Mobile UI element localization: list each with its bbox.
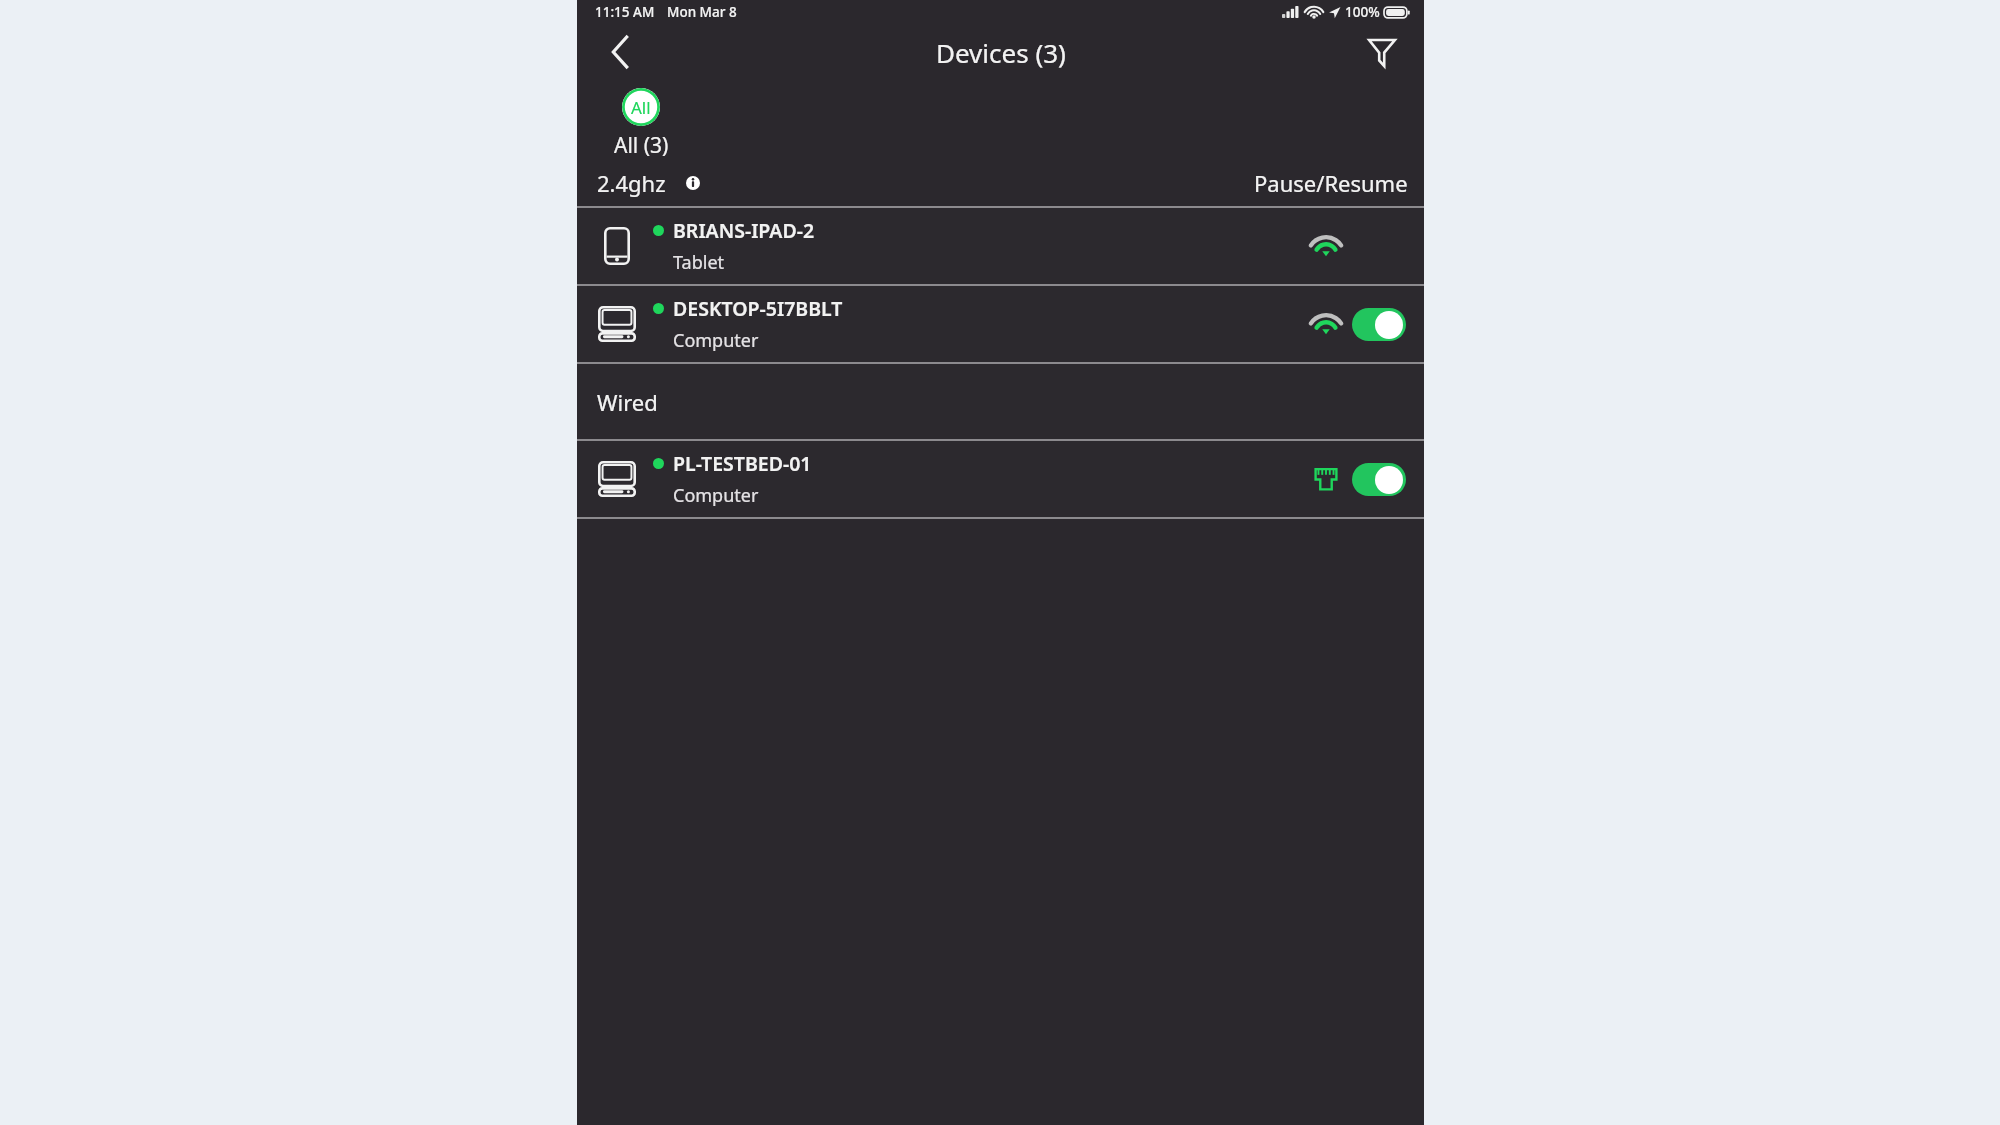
button[interactable]: Toggle device access — [1352, 308, 1406, 341]
button[interactable]: All — [597, 88, 685, 160]
button[interactable]: PL-TESTBED-01 — [577, 441, 1424, 517]
staticText: BRIANS-IPAD-2 — [673, 217, 815, 244]
staticText: 2.4ghz — [597, 168, 666, 198]
staticText: Tablet — [673, 250, 725, 275]
staticText: All — [631, 96, 651, 119]
button[interactable]: Filter — [1358, 28, 1406, 76]
button[interactable]: Pause/Resume — [1238, 162, 1424, 204]
staticText: Wired — [597, 387, 658, 417]
staticText: 11:15 AM — [595, 3, 655, 21]
staticText: Pause/Resume — [1254, 168, 1408, 198]
button[interactable]: Information — [680, 170, 706, 196]
button[interactable]: BRIANS-IPAD-2 — [577, 208, 1424, 284]
staticText: All (3) — [614, 131, 669, 160]
staticText: PL-TESTBED-01 — [673, 450, 812, 477]
staticText: 100% — [1345, 3, 1380, 21]
staticText: DESKTOP-5I7BBLT — [673, 295, 843, 322]
staticText: Computer — [673, 328, 759, 353]
button[interactable]: Back — [597, 29, 643, 75]
staticText: Mon Mar 8 — [667, 3, 737, 21]
staticText: Devices (3) — [936, 35, 1066, 70]
button[interactable]: DESKTOP-5I7BBLT — [577, 286, 1424, 362]
button[interactable]: Toggle device access — [1352, 463, 1406, 496]
staticText: Computer — [673, 483, 759, 508]
